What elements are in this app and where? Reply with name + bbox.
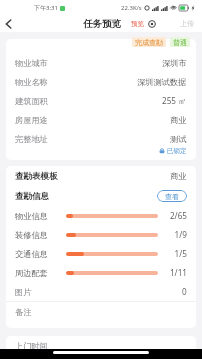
staticText: 任务预览 <box>83 18 121 30</box>
staticText: 周边配套 <box>15 268 66 278</box>
staticText: 完整地址 <box>15 134 48 144</box>
staticText: 建筑面积 <box>15 96 48 106</box>
staticText: 2/65 <box>169 210 187 221</box>
button[interactable]: 查看 <box>157 190 187 202</box>
staticText: 已锁定 <box>167 147 187 155</box>
staticText: 商业 <box>170 115 187 125</box>
staticText: 1/9 <box>174 229 187 240</box>
staticText: 图片 <box>15 287 32 297</box>
button[interactable]: 预览 <box>131 20 156 28</box>
staticText: 深圳市 <box>162 58 187 68</box>
staticText: 查勘表模板 <box>15 171 58 182</box>
staticText: 1/11 <box>169 267 187 278</box>
staticText: 完成查勘 <box>135 38 163 47</box>
staticText: 物业名称 <box>15 77 48 87</box>
staticText: 0 <box>182 286 187 297</box>
staticText: 物业信息 <box>15 211 66 221</box>
staticText: 深圳测试数据 <box>137 77 187 87</box>
staticText: 测试 <box>170 134 187 144</box>
button[interactable]: Back <box>0 16 16 32</box>
staticText: 查勘信息 <box>15 191 49 202</box>
staticText: 普通 <box>173 38 187 47</box>
staticText: 物业城市 <box>15 58 48 68</box>
staticText: 商业 <box>170 171 187 181</box>
staticText: 备注 <box>15 307 32 317</box>
staticText: 上门时间 <box>15 341 48 351</box>
staticText: 交通信息 <box>15 249 66 259</box>
staticText: 22.3K/s <box>121 4 142 12</box>
staticText: 下午3:31 <box>34 4 58 12</box>
staticText: 查看 <box>165 192 179 201</box>
staticText: 255 ㎡ <box>162 95 187 106</box>
button[interactable]: 上传 <box>180 19 194 28</box>
staticText: 房屋用途 <box>15 115 48 125</box>
staticText: 装修信息 <box>15 230 66 240</box>
staticText: 1/5 <box>174 248 187 259</box>
staticText: 预览 <box>131 20 144 28</box>
